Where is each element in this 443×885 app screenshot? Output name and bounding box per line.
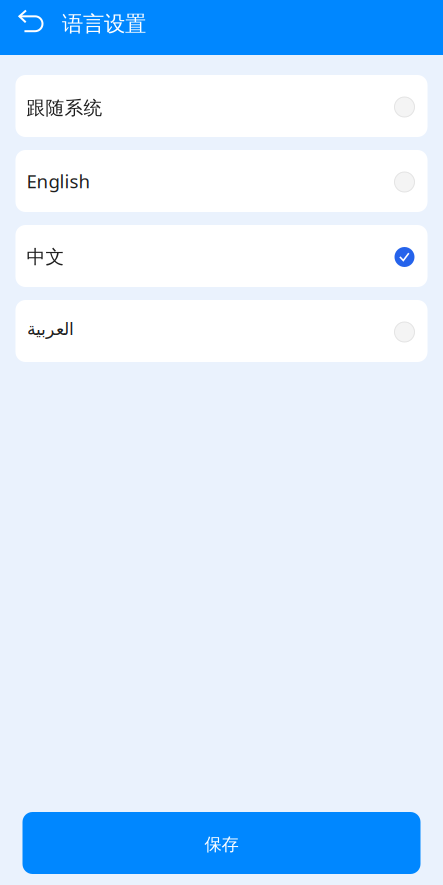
staticText: 中文	[26, 245, 64, 268]
button[interactable]: 中文	[15, 225, 427, 287]
button[interactable]: English	[15, 150, 427, 212]
staticText: 保存	[204, 834, 238, 855]
button[interactable]: العربية	[15, 300, 427, 362]
button[interactable]: 保存	[22, 812, 420, 874]
staticText: 跟随系统	[26, 96, 102, 119]
staticText: 语言设置	[62, 11, 146, 37]
staticText: العربية	[26, 319, 73, 339]
button[interactable]: Back	[13, 0, 49, 48]
button[interactable]: 跟随系统	[15, 75, 427, 137]
staticText: English	[26, 169, 90, 193]
